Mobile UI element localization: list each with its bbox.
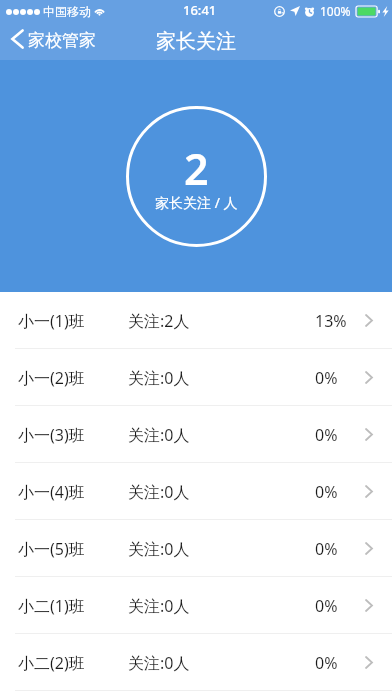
staticText: 关注:0人 (128, 595, 190, 617)
button[interactable]: 小一(4)班 (0, 463, 392, 520)
staticText: 16:41 (183, 1, 217, 19)
button[interactable]: Back to 家校管家 (0, 22, 106, 60)
button[interactable]: 小一(2)班 (0, 349, 392, 406)
staticText: 关注:0人 (128, 367, 190, 389)
button[interactable]: 小一(1)班 (0, 292, 392, 349)
staticText: 家校管家 (28, 30, 96, 51)
staticText: 小一(4)班 (18, 481, 85, 503)
staticText: 2 (184, 139, 209, 198)
button[interactable]: 小二(2)班 (0, 634, 392, 691)
staticText: 家长关注 (156, 29, 236, 54)
staticText: 家长关注 / 人 (155, 193, 238, 212)
staticText: 100% (320, 3, 351, 19)
staticText: 关注:0人 (128, 424, 190, 446)
staticText: 0% (315, 538, 338, 560)
button[interactable]: 小二(1)班 (0, 577, 392, 634)
staticText: 0% (315, 652, 338, 674)
staticText: 0% (315, 424, 338, 446)
staticText: 0% (315, 367, 338, 389)
staticText: 小一(1)班 (18, 310, 85, 332)
staticText: 关注:2人 (128, 310, 190, 332)
staticText: 小二(1)班 (18, 595, 85, 617)
staticText: 0% (315, 481, 338, 503)
staticText: 小一(2)班 (18, 367, 85, 389)
staticText: 小二(2)班 (18, 652, 85, 674)
staticText: 小一(5)班 (18, 538, 85, 560)
button[interactable]: 小一(3)班 (0, 406, 392, 463)
staticText: 0% (315, 595, 338, 617)
staticText: 关注:0人 (128, 481, 190, 503)
staticText: 小一(3)班 (18, 424, 85, 446)
staticText: 关注:0人 (128, 652, 190, 674)
staticText: 13% (315, 310, 347, 332)
staticText: 中国移动 (43, 4, 91, 19)
staticText: 关注:0人 (128, 538, 190, 560)
button[interactable]: 小一(5)班 (0, 520, 392, 577)
